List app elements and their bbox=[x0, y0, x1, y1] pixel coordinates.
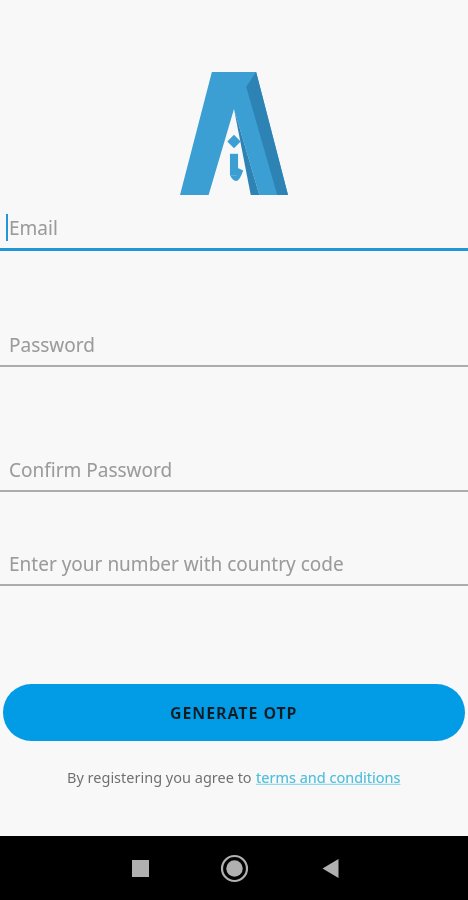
button[interactable]: terms and conditions bbox=[256, 767, 401, 787]
staticText: Enter your number with country code bbox=[9, 551, 344, 577]
staticText: Confirm Password bbox=[9, 457, 173, 483]
button[interactable]: Enter your number with country code bbox=[0, 551, 468, 586]
button[interactable]: Password bbox=[0, 332, 468, 367]
staticText: Password bbox=[9, 332, 95, 358]
button[interactable]: Recent apps bbox=[118, 846, 162, 890]
staticText: GENERATE OTP bbox=[170, 702, 298, 724]
button[interactable]: Back bbox=[308, 846, 352, 890]
staticText: terms and conditions bbox=[256, 767, 401, 787]
button[interactable]: Home bbox=[210, 844, 258, 892]
button[interactable]: GENERATE OTP bbox=[3, 684, 465, 741]
staticText: By registering you agree to bbox=[67, 767, 256, 787]
staticText: Email bbox=[9, 215, 58, 241]
button[interactable]: Email bbox=[0, 214, 468, 251]
button[interactable]: Confirm Password bbox=[0, 457, 468, 492]
